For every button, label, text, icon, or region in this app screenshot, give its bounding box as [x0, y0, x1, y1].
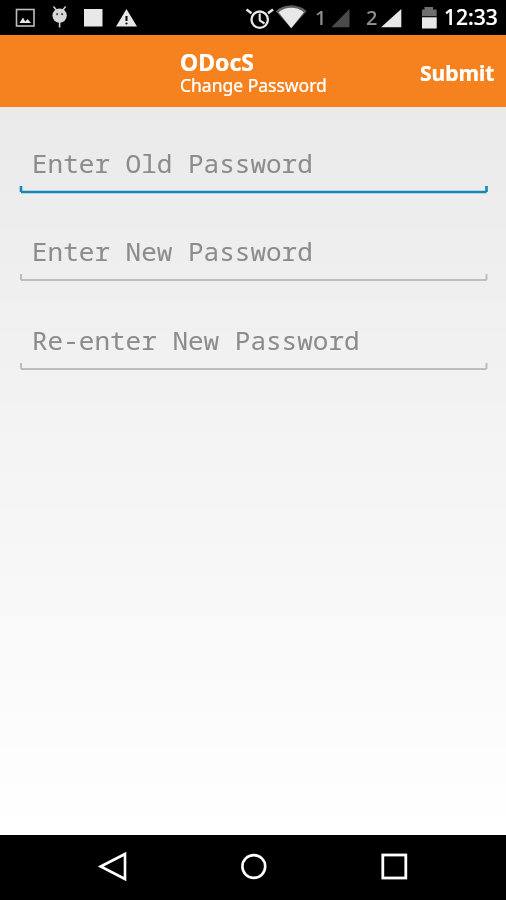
staticText: Enter Old Password — [32, 145, 313, 180]
button[interactable]: Home — [223, 838, 283, 898]
staticText: 12:33 — [444, 3, 498, 32]
button[interactable]: Recents — [364, 838, 424, 898]
button[interactable]: Enter New Password — [0, 222, 506, 281]
button[interactable]: Enter Old Password — [0, 134, 506, 193]
staticText: 1 — [315, 4, 327, 31]
button[interactable]: Submit — [404, 47, 506, 95]
button[interactable]: Back — [83, 838, 143, 898]
staticText: Enter New Password — [32, 233, 313, 268]
staticText: Re-enter New Password — [32, 322, 360, 357]
button[interactable]: Re-enter New Password — [0, 311, 506, 370]
staticText: ODocS — [180, 46, 254, 77]
staticText: Change Password — [180, 73, 327, 97]
staticText: Submit — [420, 59, 495, 88]
staticText: 2 — [366, 4, 378, 31]
